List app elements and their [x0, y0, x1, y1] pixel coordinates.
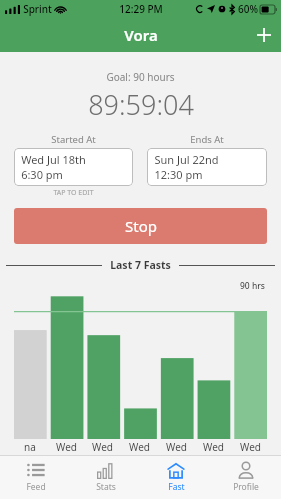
staticText: Feed	[26, 481, 46, 493]
button[interactable]: Stats	[71, 456, 141, 499]
button[interactable]: Feed	[0, 456, 71, 499]
staticText: Stats	[96, 481, 116, 493]
staticText: Wed	[56, 440, 77, 454]
staticText: Started At	[51, 133, 96, 146]
staticText: Wed	[129, 440, 150, 454]
staticText: na	[24, 440, 36, 454]
staticText: 6:30 pm	[21, 167, 63, 182]
staticText: Profile	[233, 481, 259, 493]
staticText: Goal: 90 hours	[106, 70, 175, 84]
staticText: Wed	[203, 440, 224, 454]
button[interactable]: Profile	[211, 456, 281, 499]
staticText: Sun Jul 22nd	[154, 152, 219, 167]
staticText: Wed	[240, 440, 261, 454]
staticText: 89:59:04	[88, 86, 194, 123]
staticText: 90 hrs	[240, 280, 265, 292]
button[interactable]: Add fast	[247, 18, 281, 52]
button[interactable]: Wed Jul 18th	[14, 148, 133, 186]
staticText: Ends At	[190, 133, 224, 146]
staticText: Wed Jul 18th	[21, 152, 86, 167]
button[interactable]: Fast	[141, 456, 211, 499]
staticText: Vora	[124, 25, 158, 45]
staticText: 60%	[238, 2, 258, 16]
staticText: Fast	[168, 481, 185, 493]
staticText: Sprint	[23, 2, 52, 16]
button[interactable]: Sun Jul 22nd	[147, 148, 267, 186]
staticText: Wed	[166, 440, 187, 454]
staticText: TAP TO EDIT	[53, 188, 94, 198]
staticText: Last 7 Fasts	[110, 258, 171, 272]
staticText: 12:30 pm	[154, 167, 203, 182]
staticText: 12:29 PM	[119, 2, 163, 16]
staticText: Stop	[125, 216, 157, 236]
staticText: Wed	[92, 440, 113, 454]
button[interactable]: Stop	[14, 208, 267, 244]
